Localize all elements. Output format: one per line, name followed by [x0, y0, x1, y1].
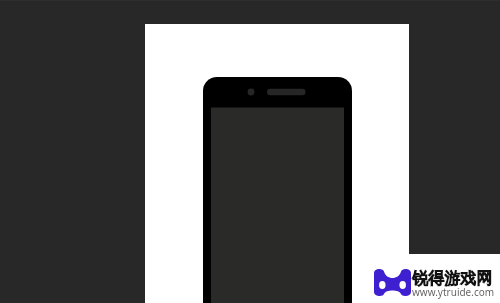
staticText: 锐得游戏网 [412, 269, 492, 289]
button[interactable]: Device preview [145, 24, 409, 303]
other: Site logo [374, 268, 411, 297]
staticText: www.ytruide.com [412, 285, 495, 299]
